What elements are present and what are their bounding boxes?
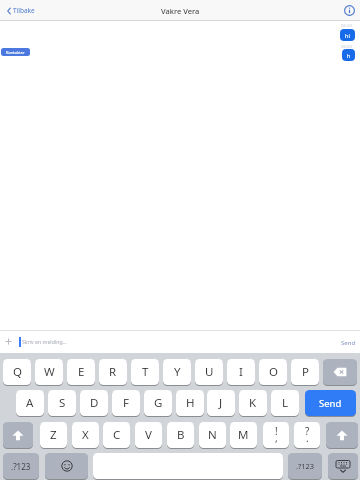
button[interactable]: A	[16, 390, 44, 416]
button[interactable]: V	[135, 422, 162, 448]
staticText: K	[249, 395, 257, 411]
button[interactable]: D	[80, 390, 108, 416]
staticText: .	[306, 431, 309, 445]
staticText: B	[177, 427, 185, 443]
staticText: .?123	[11, 461, 31, 472]
staticText: ,	[275, 431, 278, 445]
staticText: Kontakter	[6, 50, 25, 55]
staticText: Send	[319, 397, 342, 410]
button[interactable]: W	[35, 359, 63, 385]
button[interactable]: F	[112, 390, 140, 416]
button[interactable]: H	[176, 390, 204, 416]
staticText: N	[208, 427, 217, 443]
staticText: C	[113, 427, 121, 443]
staticText: L	[282, 395, 289, 411]
staticText: W	[44, 364, 55, 380]
staticText: Send	[341, 339, 356, 347]
staticText: G	[154, 395, 163, 411]
button[interactable]: h	[342, 49, 355, 61]
button[interactable]: U	[195, 359, 223, 385]
button[interactable]: Kontakter	[1, 48, 30, 56]
staticText: X	[82, 427, 89, 443]
staticText: H	[186, 395, 195, 411]
staticText: D	[90, 395, 99, 411]
staticText: Vakre Vera	[161, 6, 200, 16]
staticText: Z	[50, 427, 57, 443]
staticText: Skriv en melding...	[22, 338, 67, 345]
button[interactable]: Z	[40, 422, 67, 448]
staticText: F	[123, 395, 129, 411]
staticText: J	[219, 395, 223, 411]
staticText: S	[59, 395, 66, 411]
button[interactable]: ?	[294, 422, 320, 448]
staticText: Tilbake	[13, 6, 35, 15]
staticText: hi	[345, 32, 350, 39]
button[interactable]: Send	[341, 339, 356, 347]
button[interactable]	[328, 453, 358, 479]
staticText: 06:33	[341, 43, 352, 49]
button[interactable]	[341, 2, 358, 19]
staticText: Y	[174, 364, 181, 380]
button[interactable]: O	[259, 359, 287, 385]
button[interactable]	[45, 453, 88, 479]
staticText: h	[347, 52, 351, 59]
button[interactable]	[323, 359, 357, 385]
staticText: E	[78, 364, 85, 380]
button[interactable]: B	[167, 422, 194, 448]
button[interactable]: .?123	[288, 453, 322, 479]
staticText: U	[205, 364, 214, 380]
button[interactable]: .?123	[3, 453, 39, 479]
button[interactable]: hi	[340, 29, 355, 41]
staticText: I	[239, 364, 243, 380]
staticText: 06:33	[341, 22, 352, 28]
button[interactable]: Send	[305, 390, 356, 416]
button[interactable]: S	[48, 390, 76, 416]
staticText: .?123	[296, 461, 315, 471]
button[interactable]: G	[144, 390, 172, 416]
button[interactable]: C	[103, 422, 130, 448]
button[interactable]: K	[239, 390, 267, 416]
staticText: M	[238, 427, 249, 443]
button[interactable]: I	[227, 359, 255, 385]
button[interactable]	[93, 453, 283, 479]
button[interactable]: R	[99, 359, 127, 385]
staticText: R	[109, 364, 117, 380]
staticText: ?	[305, 424, 310, 438]
button[interactable]: N	[199, 422, 226, 448]
staticText: Q	[13, 364, 22, 380]
staticText: T	[142, 364, 149, 380]
button[interactable]: T	[131, 359, 159, 385]
staticText: A	[26, 395, 34, 411]
button[interactable]: Y	[163, 359, 191, 385]
button[interactable]: !	[263, 422, 289, 448]
button[interactable]: L	[271, 390, 299, 416]
staticText: !	[275, 424, 278, 438]
staticText: V	[145, 427, 152, 443]
staticText: O	[269, 364, 278, 380]
button[interactable]: X	[72, 422, 99, 448]
button[interactable]: E	[67, 359, 95, 385]
button[interactable]: Q	[3, 359, 31, 385]
staticText: P	[302, 364, 309, 380]
button[interactable]: M	[230, 422, 257, 448]
button[interactable]	[326, 422, 358, 448]
button[interactable]: J	[207, 390, 235, 416]
button[interactable]	[3, 422, 33, 448]
button[interactable]: P	[291, 359, 319, 385]
button[interactable]: Tilbake	[7, 0, 35, 21]
